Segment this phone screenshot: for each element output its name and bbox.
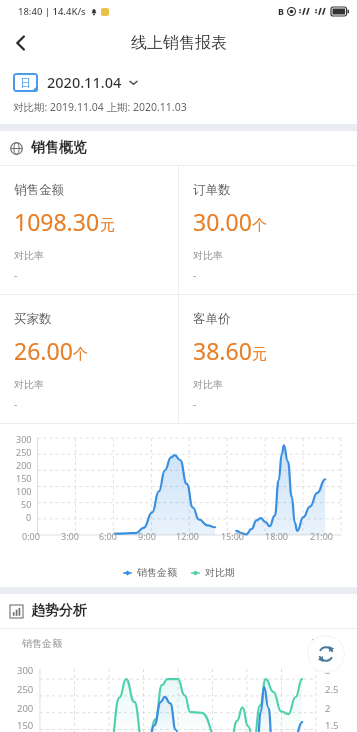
staticText: 200	[17, 702, 34, 715]
staticText: -	[193, 397, 197, 411]
staticText: 客单价	[193, 311, 231, 327]
staticText: 销售金额	[22, 637, 62, 650]
staticText: 对比率	[193, 378, 223, 391]
staticText: 150	[16, 472, 32, 484]
staticText: 对比率	[14, 249, 44, 262]
button[interactable]: 买家数	[0, 295, 178, 423]
staticText: 3:00	[61, 530, 79, 542]
staticText: 1.5	[325, 719, 339, 732]
staticText: 订	[311, 637, 321, 650]
staticText: 销售概览	[31, 139, 87, 157]
staticText: 30.00	[193, 206, 252, 237]
staticText: 对比率	[193, 249, 223, 262]
staticText: 300	[17, 664, 34, 677]
button[interactable]: 订单数	[179, 166, 357, 294]
staticText: 200	[16, 459, 32, 471]
button[interactable]: 客单价	[179, 295, 357, 423]
button[interactable]: Refresh	[307, 635, 345, 673]
staticText: 趋势分析	[31, 602, 87, 620]
staticText: -	[14, 397, 18, 411]
staticText: 2020.11.04	[47, 72, 122, 92]
staticText: B	[278, 5, 284, 17]
staticText: 250	[17, 683, 34, 696]
staticText: 线上销售报表	[131, 33, 227, 53]
staticText: 150	[17, 719, 34, 732]
staticText: 对比率	[14, 378, 44, 391]
staticText: 日	[20, 76, 31, 90]
staticText: 1098.30	[14, 206, 100, 237]
staticText: 2.5	[325, 683, 339, 696]
staticText: 对比期: 2019.11.04 上期: 2020.11.03	[13, 100, 187, 114]
staticText: 26.00	[14, 335, 73, 366]
staticText: 元	[100, 216, 115, 235]
staticText: 50	[21, 498, 32, 510]
staticText: 对比期	[205, 566, 235, 579]
staticText: 15:00	[221, 530, 245, 542]
staticText: 订单数	[193, 182, 231, 198]
staticText: 个	[73, 345, 88, 364]
staticText: 9:00	[138, 530, 156, 542]
staticText: 300	[16, 433, 32, 445]
staticText: 2	[325, 702, 331, 715]
staticText: 18:40 | 14.4K/s	[18, 5, 86, 18]
staticText: 250	[16, 446, 32, 458]
staticText: 12:00	[176, 530, 200, 542]
staticText: 100	[16, 485, 32, 497]
staticText: 销售金额	[137, 566, 177, 579]
staticText: 个	[252, 216, 267, 235]
staticText: 18:00	[265, 530, 289, 542]
staticText: -	[14, 268, 18, 282]
button[interactable]: Back	[0, 22, 42, 64]
button[interactable]: 日	[13, 72, 139, 92]
staticText: 21:00	[310, 530, 334, 542]
staticText: 6:00	[99, 530, 117, 542]
staticText: 0	[26, 511, 32, 523]
button[interactable]: 销售金额	[0, 166, 178, 294]
staticText: 销售金额	[14, 182, 64, 198]
staticText: 元	[252, 345, 267, 364]
staticText: 38.60	[193, 335, 252, 366]
staticText: 买家数	[14, 311, 52, 327]
staticText: 0:00	[22, 530, 40, 542]
staticText: 3	[325, 664, 331, 677]
staticText: -	[193, 268, 197, 282]
